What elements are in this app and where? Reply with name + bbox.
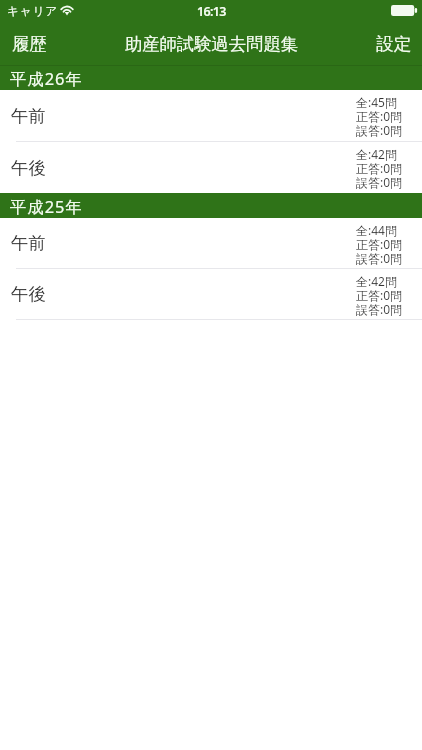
staticText: 午後: [11, 283, 46, 305]
staticText: 正答:0問: [356, 110, 403, 124]
staticText: 履歴: [12, 33, 47, 55]
staticText: 午前: [11, 105, 46, 127]
button[interactable]: 午後: [0, 269, 422, 319]
button[interactable]: 午前: [0, 218, 422, 268]
other: Wi-Fi: [60, 0, 76, 20]
staticText: 全:42問: [356, 275, 397, 289]
button[interactable]: 午後: [0, 142, 422, 193]
staticText: 誤答:0問: [356, 124, 403, 138]
staticText: 誤答:0問: [356, 252, 403, 266]
staticText: 助産師試験過去問題集: [125, 33, 298, 55]
staticText: 全:42問: [356, 148, 397, 162]
staticText: 正答:0問: [356, 238, 403, 252]
staticText: 全:44問: [356, 224, 397, 238]
staticText: 誤答:0問: [356, 303, 403, 317]
staticText: 16:13: [197, 3, 226, 20]
staticText: 誤答:0問: [356, 176, 403, 190]
button[interactable]: 履歴: [0, 27, 57, 62]
staticText: 設定: [376, 33, 411, 55]
staticText: 午後: [11, 157, 46, 179]
staticText: 正答:0問: [356, 162, 403, 176]
staticText: キャリア: [7, 4, 59, 19]
button[interactable]: 設定: [366, 27, 422, 62]
staticText: 平成25年: [10, 195, 83, 217]
staticText: 平成26年: [10, 67, 83, 89]
staticText: 正答:0問: [356, 289, 403, 303]
button[interactable]: 午前: [0, 90, 422, 141]
other: Battery: [391, 5, 419, 16]
staticText: 全:45問: [356, 96, 397, 110]
staticText: 午前: [11, 232, 46, 254]
